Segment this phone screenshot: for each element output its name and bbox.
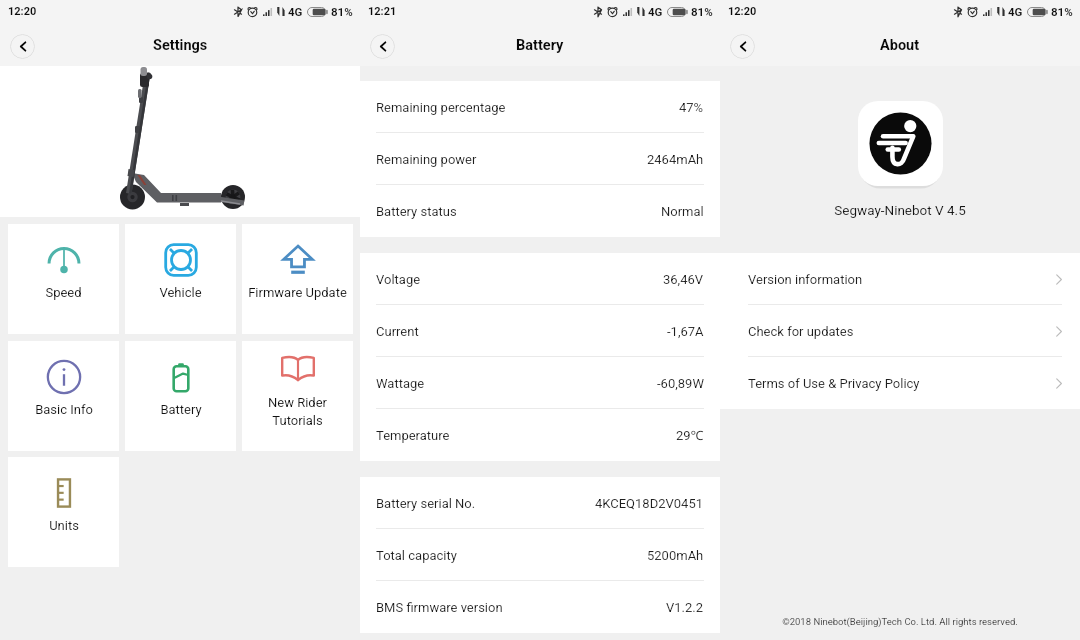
button[interactable]: Voltage [360,253,720,305]
staticText: 5200mAh [647,548,704,563]
staticText: Total capacity [376,548,457,563]
staticText: Basic Info [35,402,93,417]
staticText: 12:20 [8,5,37,18]
staticText: Terms of Use & Privacy Policy [748,376,920,391]
staticText: Segway-Ninebot V 4.5 [720,202,1080,218]
button[interactable]: Terms of Use & Privacy Policy [720,357,1080,409]
staticText: About [880,37,920,54]
staticText: Normal [661,204,704,219]
staticText: Settings [153,37,208,54]
staticText: 4G [1008,5,1023,18]
staticText: -1,67A [667,324,704,339]
button[interactable]: Version information [720,253,1080,305]
staticText: Current [376,324,419,339]
staticText: 4G [288,5,303,18]
button[interactable]: Battery status [360,185,720,237]
staticText: New Rider Tutorials [268,395,327,428]
button[interactable]: BMS firmware version [360,581,720,633]
staticText: BMS firmware version [376,600,503,615]
staticText: -60,89W [657,376,704,391]
button[interactable]: Back [370,34,395,59]
staticText: Vehicle [159,285,202,300]
staticText: ©2018 Ninebot(Beijing)Tech Co. Ltd. All … [720,616,1080,627]
button[interactable]: Speed [8,224,119,334]
staticText: V1.2.2 [666,600,704,615]
staticText: 4KCEQ18D2V0451 [595,496,704,511]
staticText: Wattage [376,376,425,391]
staticText: Remaining power [376,152,477,167]
button[interactable]: Remaining power [360,133,720,185]
staticText: Battery serial No. [376,496,476,511]
button[interactable]: Temperature [360,409,720,461]
staticText: Temperature [376,428,450,443]
staticText: Remaining percentage [376,100,506,115]
button[interactable]: Firmware Update [242,224,353,334]
button[interactable]: New Rider Tutorials [242,341,353,451]
button[interactable]: Battery [125,341,236,451]
staticText: Speed [45,285,82,300]
staticText: 81% [1051,5,1073,18]
button[interactable]: Wattage [360,357,720,409]
staticText: Check for updates [748,324,854,339]
staticText: Battery status [376,204,457,219]
button[interactable]: Back [730,34,755,59]
button[interactable]: Basic Info [8,341,119,451]
staticText: 2464mAh [647,152,704,167]
staticText: 4G [648,5,663,18]
staticText: 12:21 [368,5,397,18]
button[interactable]: Units [8,457,119,567]
staticText: 36,46V [663,272,704,287]
staticText: 29℃ [676,426,704,444]
staticText: Units [49,518,79,533]
button[interactable]: Total capacity [360,529,720,581]
staticText: Battery [160,402,202,417]
staticText: Battery [516,37,564,54]
button[interactable]: Check for updates [720,305,1080,357]
staticText: 81% [691,5,713,18]
staticText: Version information [748,272,863,287]
button[interactable]: Battery serial No. [360,477,720,529]
staticText: Firmware Update [248,285,347,300]
button[interactable]: Remaining percentage [360,81,720,133]
button[interactable]: Vehicle [125,224,236,334]
button[interactable]: Back [10,34,35,59]
staticText: 81% [331,5,353,18]
staticText: 12:20 [728,5,757,18]
staticText: Voltage [376,272,421,287]
button[interactable]: Current [360,305,720,357]
staticText: 47% [679,100,704,115]
